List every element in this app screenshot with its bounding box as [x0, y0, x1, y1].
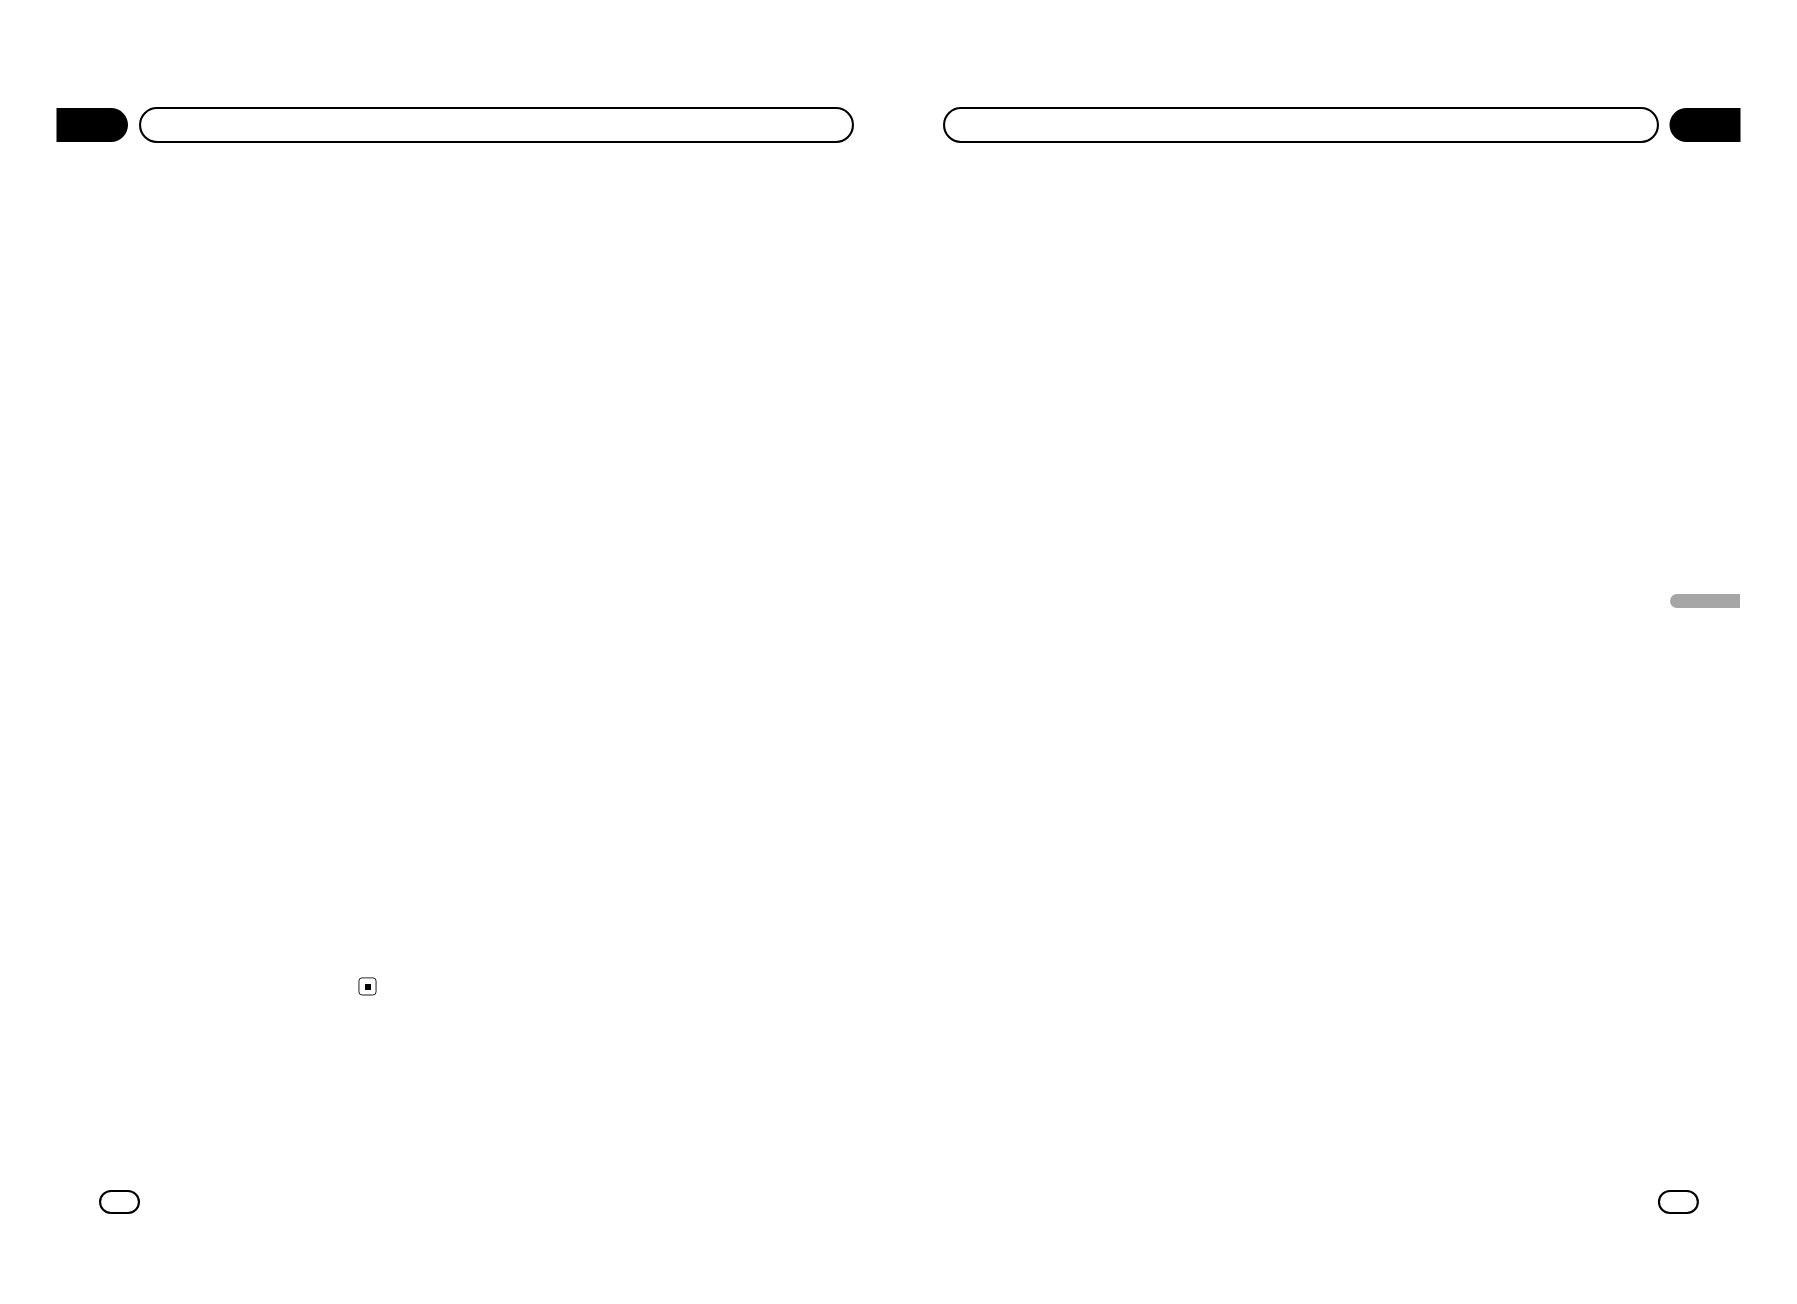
button[interactable]: Drag handle [1670, 590, 1740, 612]
button[interactable]: Previous page [99, 1190, 140, 1214]
button[interactable]: Stop [357, 976, 378, 997]
button[interactable]: Second field [943, 107, 1659, 143]
button[interactable]: Next page [1658, 1190, 1699, 1214]
button[interactable]: Previous [56, 108, 128, 142]
button[interactable]: First field [139, 107, 854, 143]
button[interactable]: Next [1669, 108, 1741, 142]
